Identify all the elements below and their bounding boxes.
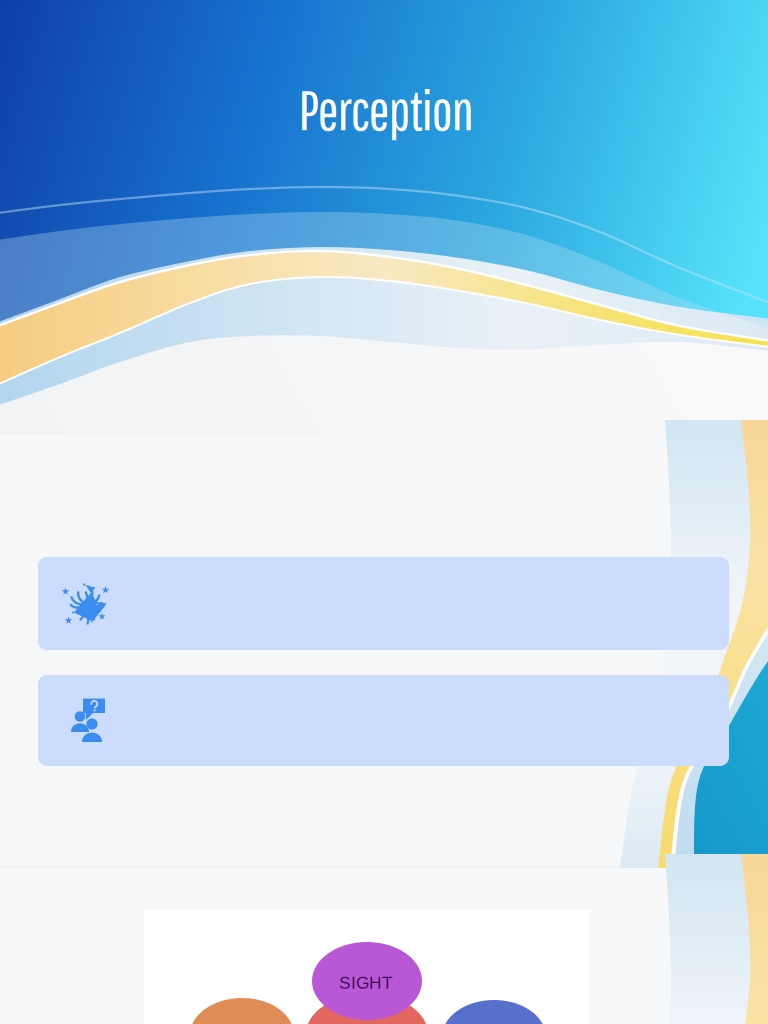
button[interactable]: Discussion placeholder (38, 675, 729, 766)
button[interactable]: Fireworks placeholder (38, 557, 729, 650)
staticText: SIGHT (339, 973, 393, 992)
staticText: Perception (298, 77, 473, 141)
